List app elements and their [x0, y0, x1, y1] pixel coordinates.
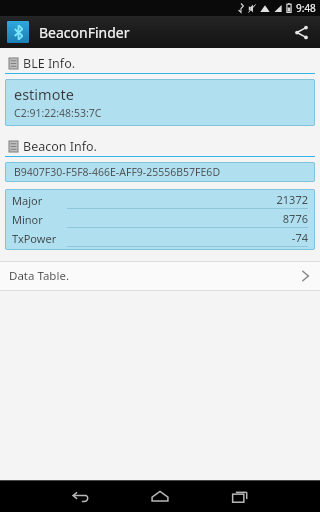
button[interactable]: Share	[282, 16, 320, 48]
staticText: 8776	[282, 211, 308, 226]
staticText: Minor	[12, 212, 43, 227]
staticText: estimote	[14, 84, 74, 104]
staticText: -74	[291, 230, 308, 245]
staticText: B9407F30-F5F8-466E-AFF9-25556B57FE6D	[14, 165, 221, 179]
button[interactable]: Home	[120, 480, 200, 512]
staticText: 21372	[276, 192, 308, 207]
staticText: 9:48	[296, 1, 316, 15]
staticText: C2:91:22:48:53:7C	[14, 106, 102, 120]
staticText: BeaconFinder	[39, 23, 130, 42]
staticText: Major	[12, 193, 43, 208]
button[interactable]: Back	[40, 480, 120, 512]
button[interactable]: Data Table.	[0, 262, 320, 290]
button[interactable]: Recents	[200, 480, 280, 512]
staticText: Data Table.	[9, 268, 69, 284]
staticText: TxPower	[12, 231, 57, 246]
staticText: Beacon Info.	[23, 138, 97, 155]
staticText: BLE Info.	[23, 55, 76, 72]
